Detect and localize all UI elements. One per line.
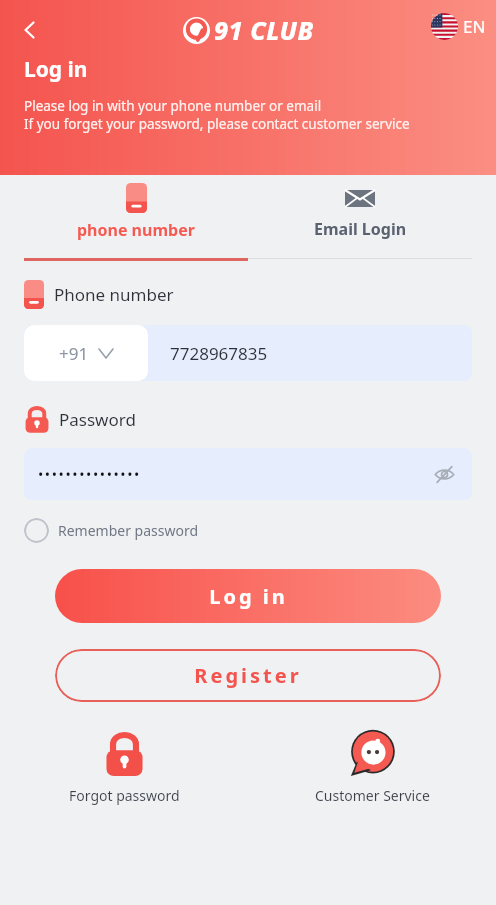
- button[interactable]: 7728967835: [148, 325, 472, 381]
- staticText: •••••••••••••••: [38, 465, 430, 484]
- staticText: Please log in with your phone number or …: [24, 97, 322, 115]
- button[interactable]: Customer Service: [248, 730, 496, 805]
- staticText: Customer Service: [315, 786, 430, 805]
- button[interactable]: phone number: [24, 175, 248, 263]
- staticText: EN: [463, 15, 486, 38]
- button[interactable]: EN: [431, 13, 486, 40]
- button[interactable]: Email Login: [248, 175, 472, 263]
- button[interactable]: Forgot password: [0, 730, 248, 805]
- staticText: Log in: [24, 55, 88, 84]
- staticText: Phone number: [54, 283, 174, 306]
- staticText: 7728967835: [170, 342, 268, 365]
- staticText: 91 CLUB: [214, 13, 314, 47]
- button[interactable]: •••••••••••••••: [24, 448, 472, 500]
- button[interactable]: Show password: [430, 460, 458, 488]
- staticText: If you forget your password, please cont…: [24, 115, 410, 133]
- staticText: Register: [194, 662, 302, 689]
- button[interactable]: Register: [55, 649, 441, 702]
- staticText: Log in: [209, 583, 288, 610]
- button[interactable]: Back: [12, 12, 48, 48]
- staticText: Email Login: [314, 218, 407, 240]
- button[interactable]: Remember password: [24, 518, 199, 543]
- staticText: phone number: [77, 219, 195, 241]
- staticText: Forgot password: [69, 786, 180, 805]
- staticText: Password: [59, 408, 136, 431]
- staticText: +91: [59, 342, 89, 365]
- button[interactable]: Log in: [55, 569, 441, 623]
- staticText: Remember password: [58, 521, 199, 540]
- button[interactable]: +91: [24, 325, 148, 381]
